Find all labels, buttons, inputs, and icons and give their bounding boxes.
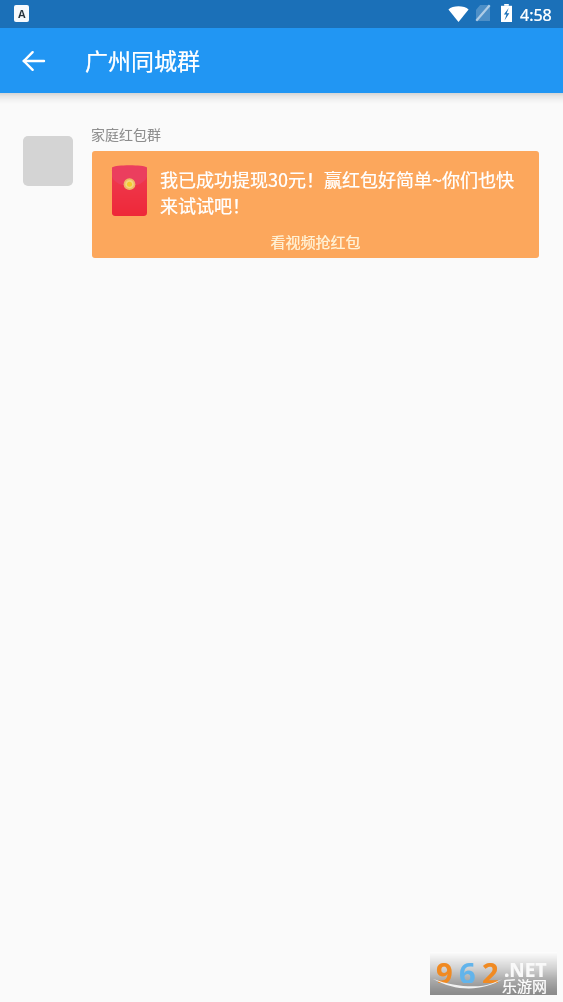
staticText: 我已成功提现30元！赢红包好简单~你们也快来试试吧！ — [160, 166, 518, 218]
staticText: 看视频抢红包 — [92, 231, 539, 253]
staticText: 2 — [482, 953, 499, 983]
staticText: 家庭红包群 — [91, 124, 161, 144]
staticText: 4:58 — [520, 4, 552, 26]
button[interactable]: Back — [13, 41, 53, 81]
staticText: 9 — [436, 953, 453, 983]
staticText: 6 — [459, 953, 476, 983]
staticText: A — [18, 6, 26, 21]
staticText: 广州同城群 — [85, 43, 200, 76]
button[interactable]: Group avatar — [23, 136, 73, 186]
staticText: 乐游网 — [502, 975, 548, 997]
staticText: .NET — [504, 957, 547, 983]
button[interactable]: 我已成功提现30元！赢红包好简单~你们也快来试试吧！ — [92, 151, 539, 258]
